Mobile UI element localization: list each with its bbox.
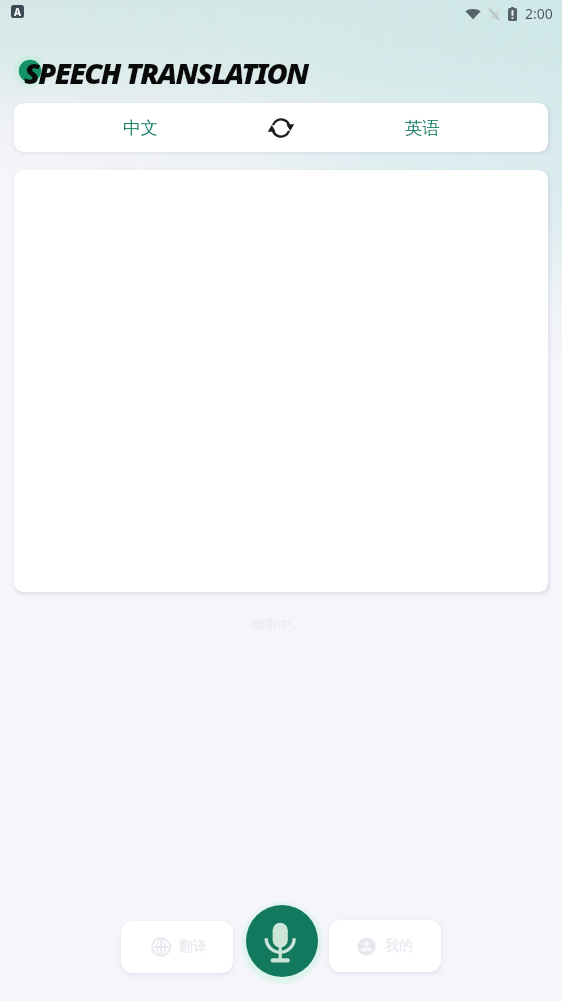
staticText: 中文 [123,117,158,139]
button[interactable]: Start recording [246,905,318,977]
staticText: A [14,5,21,18]
button[interactable]: Swap languages [266,113,296,143]
staticText: 翻译 [179,938,207,956]
button[interactable]: 翻译 [121,921,233,973]
button[interactable]: 英语 [296,103,548,152]
staticText: SPEECH TRANSLATION [24,53,308,92]
button[interactable]: 中文 [14,103,266,152]
staticText: 2:00 [525,4,553,23]
staticText: 我的 [385,937,413,955]
button[interactable]: 我的 [329,920,441,972]
staticText: 英语 [405,117,440,139]
